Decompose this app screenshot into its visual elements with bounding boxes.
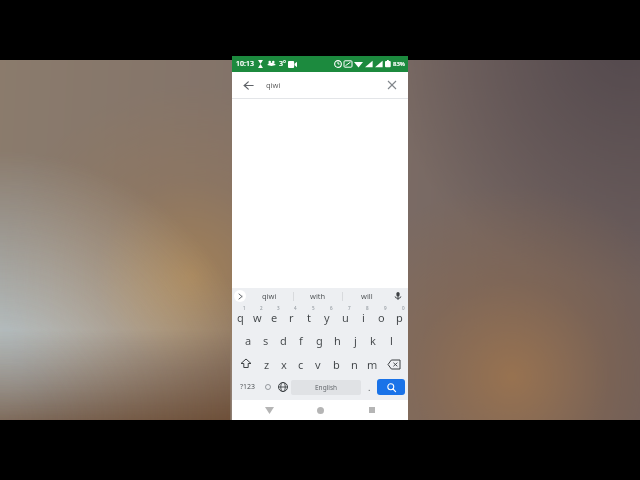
staticText: l xyxy=(390,333,393,348)
button[interactable]: 2 xyxy=(249,304,266,328)
button[interactable]: v xyxy=(309,352,327,376)
button[interactable]: f xyxy=(292,328,310,352)
button[interactable]: 4 xyxy=(283,304,300,328)
staticText: 10:13 xyxy=(236,59,254,69)
staticText: i xyxy=(362,310,365,325)
staticText: with xyxy=(310,291,326,301)
staticText: t xyxy=(307,310,311,325)
staticText: z xyxy=(264,357,270,372)
staticText: f xyxy=(299,333,303,348)
button[interactable]: a xyxy=(240,328,257,352)
button[interactable]: c xyxy=(292,352,309,376)
button[interactable]: 5 xyxy=(300,304,318,328)
staticText: b xyxy=(333,357,340,372)
staticText: x xyxy=(281,357,287,372)
staticText: 3° xyxy=(279,59,286,69)
staticText: n xyxy=(351,357,358,372)
button[interactable]: Emoji xyxy=(261,376,275,398)
button[interactable]: Home xyxy=(305,400,335,420)
button[interactable]: 6 xyxy=(318,304,336,328)
button[interactable]: 3 xyxy=(266,304,283,328)
staticText: qiwi xyxy=(266,80,281,90)
staticText: j xyxy=(354,333,357,348)
button[interactable]: ?123 xyxy=(235,376,261,398)
button[interactable]: will xyxy=(343,288,391,304)
staticText: y xyxy=(324,310,330,325)
staticText: 6 xyxy=(330,305,333,311)
staticText: a xyxy=(245,333,252,348)
staticText: 8 xyxy=(366,305,369,311)
button[interactable]: Back xyxy=(238,75,258,95)
button[interactable]: k xyxy=(364,328,382,352)
staticText: h xyxy=(334,333,341,348)
staticText: g xyxy=(316,333,323,348)
button[interactable]: Change language xyxy=(275,376,291,398)
button[interactable]: Search xyxy=(377,379,405,395)
button[interactable]: qiwi xyxy=(266,80,382,90)
staticText: e xyxy=(271,310,278,325)
staticText: m xyxy=(367,357,378,372)
button[interactable]: 1 xyxy=(232,304,249,328)
staticText: 1 xyxy=(243,305,246,311)
button[interactable]: Backspace xyxy=(381,352,406,376)
staticText: 0 xyxy=(402,305,405,311)
button[interactable]: 8 xyxy=(354,304,372,328)
button[interactable]: qiwi xyxy=(246,288,293,304)
button[interactable]: j xyxy=(346,328,364,352)
staticText: u xyxy=(342,310,349,325)
staticText: 2 xyxy=(260,305,263,311)
staticText: p xyxy=(396,310,403,325)
staticText: v xyxy=(315,357,321,372)
button[interactable]: English xyxy=(291,380,361,395)
staticText: 83% xyxy=(393,60,405,68)
button[interactable]: l xyxy=(382,328,400,352)
staticText: o xyxy=(378,310,385,325)
staticText: English xyxy=(315,383,338,392)
button[interactable]: 9 xyxy=(372,304,390,328)
button[interactable]: b xyxy=(327,352,345,376)
button[interactable]: 0 xyxy=(390,304,408,328)
button[interactable]: Recents xyxy=(357,400,387,420)
button[interactable]: g xyxy=(310,328,328,352)
staticText: 9 xyxy=(384,305,387,311)
staticText: 7 xyxy=(348,305,351,311)
button[interactable]: Shift xyxy=(234,352,258,376)
button[interactable]: 7 xyxy=(336,304,354,328)
staticText: 3 xyxy=(277,305,280,311)
staticText: 4 xyxy=(294,305,297,311)
button[interactable]: Back xyxy=(254,400,284,420)
button[interactable]: with xyxy=(294,288,342,304)
staticText: q xyxy=(237,310,244,325)
staticText: s xyxy=(263,333,269,348)
staticText: w xyxy=(253,310,262,325)
button[interactable]: m xyxy=(363,352,381,376)
staticText: d xyxy=(280,333,287,348)
button[interactable]: . xyxy=(361,376,377,398)
staticText: r xyxy=(289,310,294,325)
button[interactable]: Voice input xyxy=(391,289,405,303)
staticText: will xyxy=(361,291,373,301)
button[interactable]: z xyxy=(258,352,275,376)
staticText: qiwi xyxy=(262,291,277,301)
button[interactable]: s xyxy=(257,328,274,352)
staticText: k xyxy=(370,333,376,348)
staticText: . xyxy=(368,381,371,393)
button[interactable]: d xyxy=(274,328,292,352)
staticText: 5 xyxy=(312,305,315,311)
button[interactable]: h xyxy=(328,328,346,352)
staticText: ?123 xyxy=(240,382,256,392)
button[interactable]: n xyxy=(345,352,363,376)
button[interactable]: x xyxy=(275,352,292,376)
button[interactable]: More suggestions xyxy=(234,290,246,302)
button[interactable]: Clear xyxy=(382,75,402,95)
staticText: c xyxy=(298,357,304,372)
